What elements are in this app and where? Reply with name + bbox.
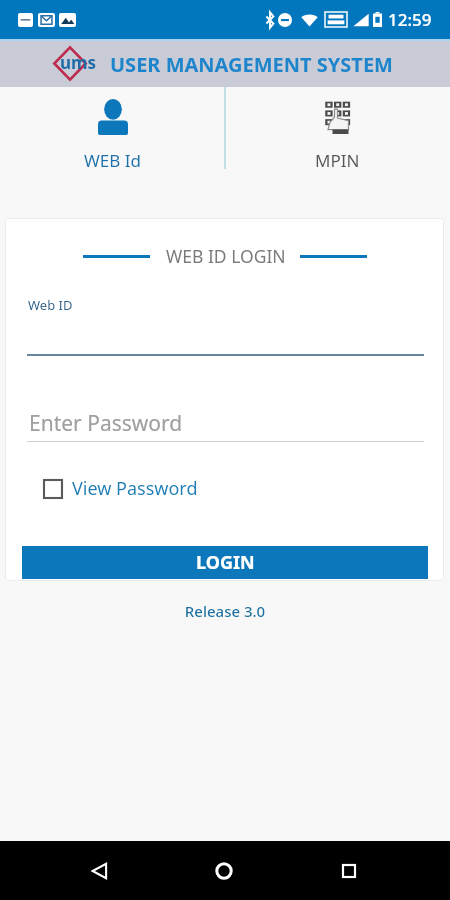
button[interactable]: Recents [323, 845, 374, 896]
button[interactable]: MPIN [225, 87, 450, 218]
button[interactable]: View Password [43, 476, 198, 501]
staticText: Release 3.0 [0, 601, 450, 621]
staticText: WEB ID LOGIN [166, 244, 286, 268]
staticText: LOGIN [196, 550, 255, 575]
staticText: MPIN [315, 149, 360, 172]
button[interactable]: Back [74, 845, 125, 896]
staticText: 12:59 [388, 8, 432, 31]
staticText: WEB Id [84, 149, 141, 172]
staticText: View Password [72, 476, 198, 501]
staticText: ums [60, 51, 97, 74]
button[interactable]: WEB Id [0, 87, 225, 218]
button[interactable]: LOGIN [22, 546, 428, 579]
button[interactable]: Home [198, 845, 249, 896]
staticText: Enter Password [29, 409, 183, 438]
staticText: USER MANAGEMENT SYSTEM [110, 51, 393, 78]
staticText: Web ID [28, 296, 73, 314]
